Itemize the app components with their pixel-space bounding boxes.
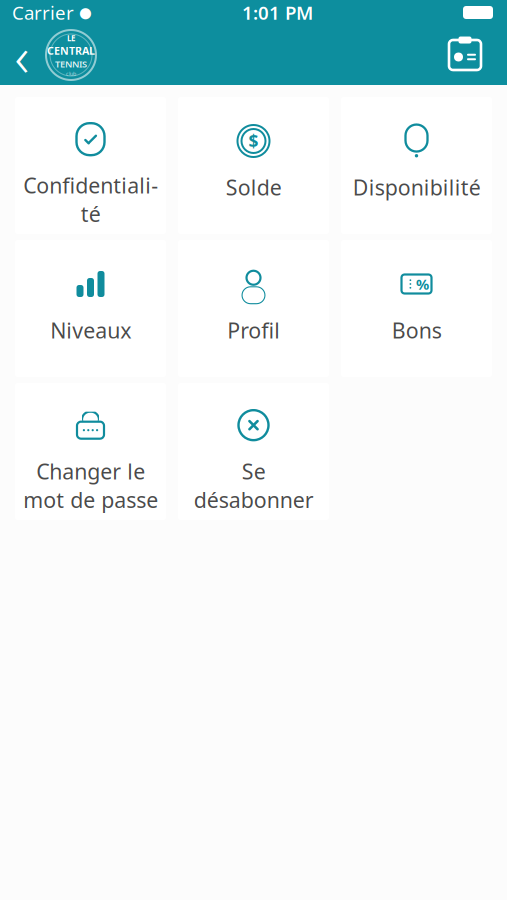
button[interactable]: Confidentialité: [15, 97, 166, 234]
staticText: Confidentialité: [23, 171, 158, 228]
staticText: Niveaux: [50, 316, 131, 344]
staticText: 1:01 PM: [242, 0, 313, 25]
staticText: LE: [67, 33, 75, 43]
staticText: club: [66, 70, 76, 77]
staticText: Carrier: [12, 0, 74, 25]
button[interactable]: Disponibilité: [341, 97, 492, 234]
staticText: Profil: [227, 316, 280, 344]
button[interactable]: Membership card: [437, 27, 493, 83]
staticText: %: [416, 274, 429, 294]
button[interactable]: Niveaux: [15, 240, 166, 377]
staticText: ●: [79, 4, 92, 21]
button[interactable]: $: [178, 97, 329, 234]
button[interactable]: Profil: [178, 240, 329, 377]
button[interactable]: %: [341, 240, 492, 377]
staticText: Se désabonner: [193, 457, 313, 514]
staticText: ‹: [14, 18, 29, 92]
staticText: TENNIS: [55, 58, 87, 70]
staticText: Disponibilité: [352, 173, 480, 201]
staticText: $: [248, 129, 258, 152]
staticText: Bons: [391, 316, 441, 344]
staticText: Changer le mot de passe: [23, 457, 158, 514]
button[interactable]: Changer le mot de passe: [15, 383, 166, 520]
staticText: Solde: [225, 173, 281, 201]
button[interactable]: Se désabonner: [178, 383, 329, 520]
staticText: CENTRAL: [47, 43, 95, 58]
button[interactable]: Back: [0, 27, 44, 83]
